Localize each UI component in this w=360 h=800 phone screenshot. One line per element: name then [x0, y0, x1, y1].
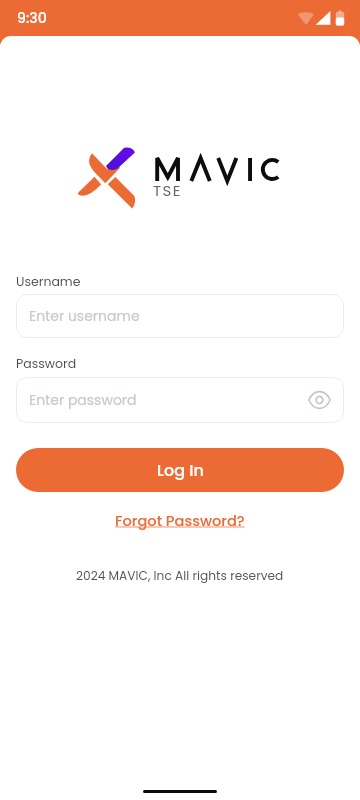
staticText: 9:30 [17, 8, 47, 28]
button[interactable]: Enter password [16, 377, 344, 423]
button[interactable]: Show password [307, 388, 331, 412]
button[interactable]: Enter username [16, 294, 344, 338]
button[interactable]: Forgot Password? [109, 508, 251, 534]
staticText: Forgot Password? [115, 511, 245, 531]
staticText: Username [16, 273, 81, 290]
staticText: Enter username [29, 306, 140, 326]
staticText: 2024 MAVIC, Inc All rights reserved [76, 567, 284, 584]
staticText: TSE [153, 180, 182, 201]
staticText: Log In [157, 459, 204, 481]
button[interactable]: Log In [16, 448, 344, 492]
staticText: Password [16, 355, 77, 372]
staticText: Enter password [29, 390, 137, 410]
